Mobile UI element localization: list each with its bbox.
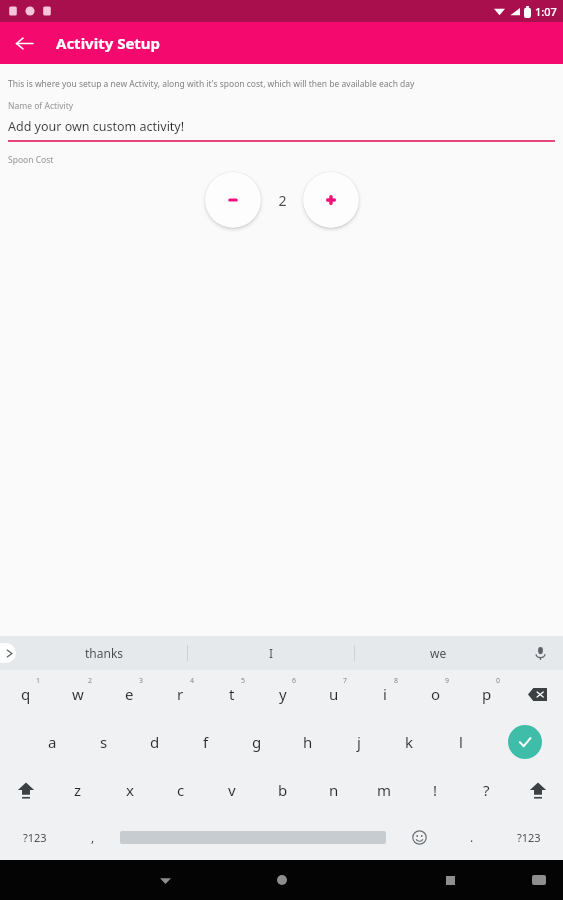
button[interactable]: t (206, 670, 257, 718)
staticText: , (91, 829, 95, 845)
button[interactable]: ?123 (0, 814, 69, 860)
staticText: q (21, 684, 31, 704)
button[interactable]: ? (461, 766, 512, 814)
staticText: 6 (292, 676, 297, 686)
button[interactable]: thanks (22, 636, 187, 670)
staticText: 8 (394, 676, 399, 686)
button[interactable]: I (188, 636, 354, 670)
staticText: 2 (278, 191, 287, 210)
staticText: 1:07 (535, 4, 557, 19)
staticText: y (279, 684, 287, 704)
button[interactable]: Recent apps (405, 860, 495, 900)
staticText: Add your own custom activity! (8, 118, 185, 135)
staticText: t (229, 684, 235, 704)
button[interactable]: Decrease spoon cost (205, 172, 261, 228)
button[interactable]: q (0, 670, 52, 718)
staticText: l (459, 732, 463, 752)
button[interactable]: m (359, 766, 410, 814)
staticText: s (100, 732, 108, 752)
staticText: d (150, 732, 160, 752)
staticText: r (177, 684, 184, 704)
staticText: Name of Activity (8, 100, 74, 112)
button[interactable]: x (104, 766, 155, 814)
button[interactable]: Home (237, 860, 327, 900)
button[interactable]: v (206, 766, 257, 814)
staticText: 9 (445, 676, 450, 686)
staticText: z (74, 780, 82, 800)
staticText: 5 (241, 676, 246, 686)
button[interactable]: w (52, 670, 104, 718)
button[interactable]: Shift (0, 766, 52, 814)
button[interactable]: i (359, 670, 410, 718)
button[interactable]: s (78, 718, 129, 766)
button[interactable]: More suggestions (0, 643, 16, 663)
staticText: thanks (85, 645, 124, 661)
button[interactable]: we (355, 636, 521, 670)
button[interactable]: u (308, 670, 359, 718)
button[interactable]: j (333, 718, 384, 766)
staticText: f (203, 732, 209, 752)
staticText: 4 (190, 676, 195, 686)
staticText: j (357, 732, 361, 752)
staticText: ?123 (517, 830, 541, 845)
button[interactable]: Voice input (529, 642, 551, 664)
button[interactable]: f (180, 718, 231, 766)
staticText: c (177, 780, 185, 800)
button[interactable]: e (104, 670, 155, 718)
staticText: ? (483, 780, 490, 800)
button[interactable]: Back (110, 860, 220, 900)
button[interactable]: a (27, 718, 78, 766)
staticText: m (377, 780, 392, 800)
button[interactable]: ! (410, 766, 461, 814)
button[interactable]: c (155, 766, 206, 814)
button[interactable]: o (410, 670, 461, 718)
button[interactable]: Comma (69, 814, 116, 860)
button[interactable]: b (257, 766, 308, 814)
button[interactable]: h (282, 718, 333, 766)
button[interactable]: Hide keyboard (515, 860, 563, 900)
staticText: n (329, 780, 339, 800)
staticText: This is where you setup a new Activity, … (8, 78, 415, 90)
button[interactable]: y (257, 670, 308, 718)
button[interactable]: p (461, 670, 512, 718)
button[interactable]: Backspace (512, 670, 563, 718)
button[interactable]: r (155, 670, 206, 718)
button[interactable]: l (435, 718, 486, 766)
staticText: . (470, 829, 474, 845)
staticText: Activity Setup (56, 33, 161, 53)
staticText: I (269, 645, 274, 661)
button[interactable]: g (231, 718, 282, 766)
staticText: 2 (88, 676, 93, 686)
staticText: a (48, 732, 57, 752)
button[interactable]: d (129, 718, 180, 766)
button[interactable]: Add your own custom activity! (8, 118, 555, 142)
staticText: g (252, 732, 262, 752)
staticText: p (482, 684, 492, 704)
staticText: 0 (496, 676, 501, 686)
staticText: v (228, 780, 236, 800)
staticText: b (278, 780, 288, 800)
button[interactable]: ?123 (495, 814, 563, 860)
button[interactable]: Emoji (390, 814, 448, 860)
button[interactable]: Space (116, 814, 390, 860)
button[interactable]: Back (6, 25, 42, 61)
staticText: w (72, 684, 84, 704)
button[interactable]: Period (448, 814, 495, 860)
button[interactable]: Shift (512, 766, 563, 814)
staticText: h (303, 732, 313, 752)
button[interactable]: Enter (486, 718, 563, 766)
staticText: we (430, 645, 447, 661)
button[interactable]: z (52, 766, 104, 814)
staticText: i (383, 684, 387, 704)
staticText: Spoon Cost (8, 154, 54, 166)
staticText: 1 (36, 676, 41, 686)
button[interactable]: n (308, 766, 359, 814)
staticText: ! (433, 780, 438, 800)
button[interactable]: k (384, 718, 435, 766)
staticText: k (405, 732, 414, 752)
staticText: e (125, 684, 134, 704)
staticText: 3 (139, 676, 144, 686)
staticText: x (126, 780, 134, 800)
button[interactable]: Increase spoon cost (303, 172, 359, 228)
staticText: ?123 (23, 830, 47, 845)
